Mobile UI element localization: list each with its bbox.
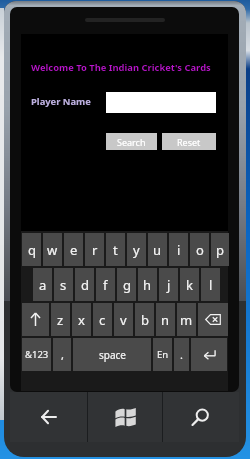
staticText: q [28,241,36,259]
button[interactable]: t [106,233,125,266]
button[interactable]: Reset [162,133,216,150]
staticText: s [60,276,67,294]
staticText: a [39,276,47,294]
button[interactable]: Back [10,392,87,442]
button[interactable]: r [85,233,104,266]
button[interactable]: v [114,303,133,336]
staticText: j [167,276,171,294]
button[interactable]: o [190,233,209,266]
button[interactable]: En [153,338,172,371]
button[interactable]: e [64,233,83,266]
button[interactable]: q [22,233,41,266]
staticText: space [99,348,126,362]
button[interactable] [198,303,228,336]
staticText: x [78,311,85,329]
staticText: En [157,348,169,361]
staticText: b [141,311,149,329]
staticText: Welcome To The Indian Cricket's Cards [31,61,211,74]
button[interactable]: space [73,338,151,371]
button[interactable]: i [169,233,188,266]
staticText: k [186,276,193,294]
staticText: Search [117,136,146,148]
staticText: z [57,311,64,329]
staticText: l [209,276,213,294]
staticText: o [196,241,204,259]
staticText: y [133,241,140,259]
staticText: f [103,276,108,294]
staticText: Reset [177,136,201,148]
button[interactable]: Search [163,392,239,442]
staticText: &123 [25,348,49,361]
staticText: e [70,241,78,259]
staticText: m [180,311,193,329]
button[interactable]: j [159,268,178,301]
staticText: g [123,276,131,294]
staticText: v [120,311,127,329]
button[interactable]: f [96,268,115,301]
button[interactable] [191,338,227,371]
button[interactable]: x [72,303,91,336]
button[interactable]: w [43,233,62,266]
button[interactable]: l [201,268,220,301]
button[interactable]: n [156,303,175,336]
staticText: i [177,241,181,259]
staticText: d [81,276,89,294]
staticText: , [61,347,64,362]
button[interactable]: Start [88,392,162,442]
staticText: c [99,311,106,329]
button[interactable]: m [177,303,196,336]
button[interactable]: k [180,268,199,301]
button[interactable] [22,303,49,336]
button[interactable]: , [53,338,71,371]
button[interactable]: d [75,268,94,301]
button[interactable]: s [54,268,73,301]
button[interactable]: b [135,303,154,336]
staticText: u [153,241,162,259]
staticText: r [92,241,98,259]
button[interactable]: a [33,268,52,301]
staticText: t [113,241,118,259]
button[interactable]: . [174,338,189,371]
button[interactable]: u [148,233,167,266]
button[interactable]: y [127,233,146,266]
button[interactable]: g [117,268,136,301]
staticText: n [161,311,170,329]
staticText: w [47,241,58,259]
staticText: Player Name [31,95,91,108]
button[interactable]: p [211,233,229,266]
staticText: p [216,241,224,259]
button[interactable]: Search [106,133,157,150]
staticText: . [180,347,183,362]
button[interactable]: c [93,303,112,336]
button[interactable]: z [51,303,70,336]
staticText: h [143,276,152,294]
button[interactable]: &123 [22,338,51,371]
button[interactable]: h [138,268,157,301]
